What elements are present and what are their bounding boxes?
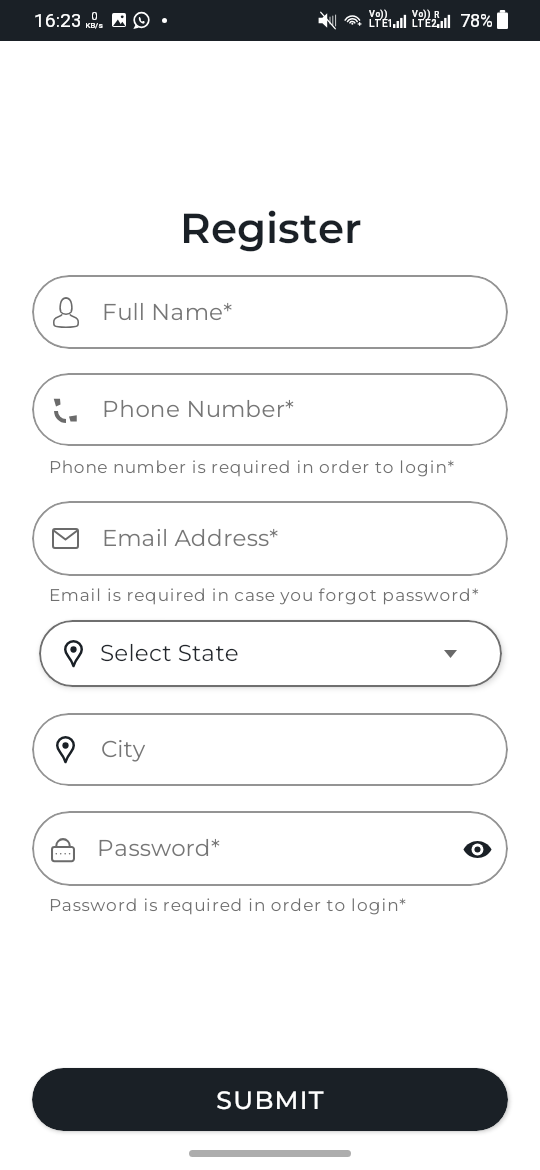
other: Phone number is required in order to log…	[49, 459, 540, 479]
button[interactable]: City	[32, 713, 508, 786]
button[interactable]: Email Address*	[32, 501, 508, 576]
button[interactable]: Show password	[461, 833, 493, 865]
other: Register	[170, 206, 370, 252]
other: Password is required in order to login*	[49, 897, 540, 917]
button[interactable]: Phone Number*	[32, 373, 508, 446]
other: Email is required in case you forgot pas…	[49, 587, 540, 607]
button[interactable]: Password*	[32, 811, 508, 886]
button[interactable]: Full Name*	[32, 275, 508, 349]
button[interactable]: Submit	[32, 1068, 508, 1131]
button[interactable]: Select State	[39, 620, 502, 687]
